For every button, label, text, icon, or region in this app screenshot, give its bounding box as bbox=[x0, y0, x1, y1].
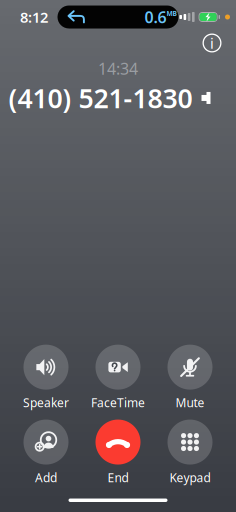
staticText: End bbox=[107, 470, 128, 485]
staticText: (410) 521-1830 bbox=[8, 80, 192, 116]
button[interactable]: Speaker bbox=[10, 345, 82, 410]
staticText: Keypad bbox=[169, 470, 210, 485]
staticText: 14:34 bbox=[98, 58, 138, 79]
button[interactable]: Call info bbox=[197, 28, 227, 58]
staticText: 0.6 bbox=[144, 6, 166, 28]
staticText: 8:12 bbox=[20, 7, 48, 27]
staticText: FaceTime bbox=[91, 395, 145, 410]
button[interactable]: Keypad bbox=[154, 420, 226, 485]
staticText: Add bbox=[35, 470, 57, 485]
staticText: MB bbox=[166, 9, 176, 18]
staticText: Mute bbox=[175, 395, 204, 410]
button[interactable]: Mute bbox=[154, 345, 226, 410]
button[interactable]: FaceTime bbox=[82, 345, 154, 410]
staticText: i bbox=[210, 33, 214, 53]
button[interactable]: End bbox=[82, 420, 154, 485]
button[interactable]: Add bbox=[10, 420, 82, 485]
staticText: Speaker bbox=[23, 395, 69, 410]
